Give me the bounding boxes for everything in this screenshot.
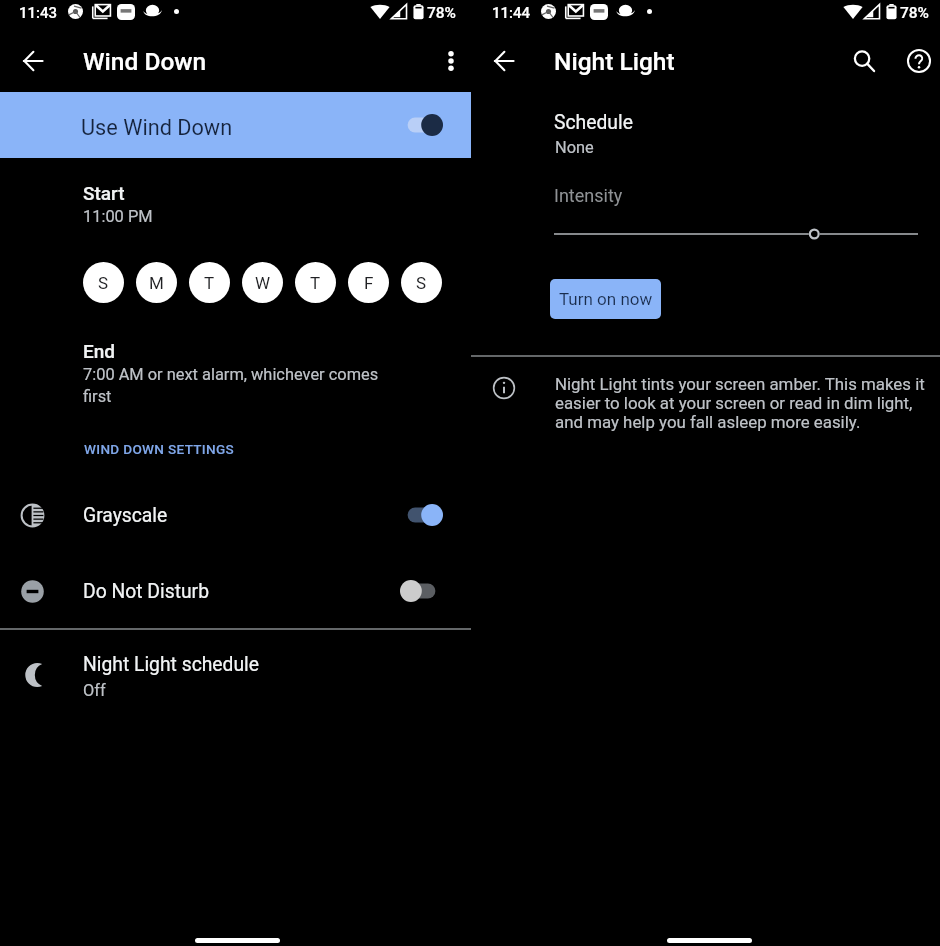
button[interactable]: Search [851,48,877,74]
staticText: 11:00 PM [83,207,153,226]
staticText: Do Not Disturb [83,580,209,603]
staticText: Intensity [554,185,623,206]
staticText: End [83,340,116,362]
staticText: 78% [427,4,457,22]
staticText: WIND DOWN SETTINGS [84,441,235,457]
button[interactable]: Do Not Disturb, off [400,579,438,603]
staticText: Turn on now [559,289,653,309]
button[interactable]: Back [494,51,514,71]
staticText: S [416,273,427,293]
staticText: T [204,273,215,293]
staticText: W [255,273,271,293]
staticText: Off [83,681,106,700]
staticText: T [310,273,321,293]
staticText: 11:43 [19,4,58,22]
button[interactable]: Back [23,51,43,71]
button[interactable]: Grayscale, on [405,503,443,527]
button[interactable]: Do Not Disturb [0,562,471,620]
button[interactable]: W [242,262,283,303]
button[interactable]: Night Light schedule [0,644,471,706]
staticText: F [364,273,374,293]
button[interactable]: Use Wind Down, on [405,113,443,137]
button[interactable]: WIND DOWN SETTINGS [84,438,235,464]
button[interactable]: T [295,262,336,303]
button[interactable]: Start [0,175,471,231]
button[interactable]: Grayscale [0,486,471,544]
button[interactable]: Schedule [471,108,940,162]
button[interactable]: End [0,334,471,412]
staticText: None [555,138,594,157]
button[interactable]: Intensity slider [471,222,940,246]
staticText: 78% [900,4,930,22]
staticText: 11:44 [492,4,531,22]
staticText: Night Light tints your screen amber. Thi… [555,374,930,432]
button[interactable]: S [83,262,124,303]
staticText: Night Light schedule [83,653,260,676]
staticText: Start [83,182,125,204]
staticText: 7:00 AM or next alarm, whichever comes f… [83,365,383,406]
staticText: Grayscale [83,504,168,527]
staticText: Use Wind Down [81,115,233,140]
button[interactable]: F [348,262,389,303]
staticText: Schedule [554,111,633,134]
button[interactable]: T [189,262,230,303]
staticText: Wind Down [83,47,207,76]
staticText: M [149,273,164,293]
button[interactable]: Turn on now [550,279,661,319]
staticText: S [98,273,109,293]
button[interactable]: More options [448,50,454,72]
button[interactable]: Help [906,48,932,74]
button[interactable]: S [401,262,442,303]
button[interactable]: M [136,262,177,303]
button[interactable]: Use Wind Down [0,92,471,158]
staticText: Night Light [554,47,675,76]
